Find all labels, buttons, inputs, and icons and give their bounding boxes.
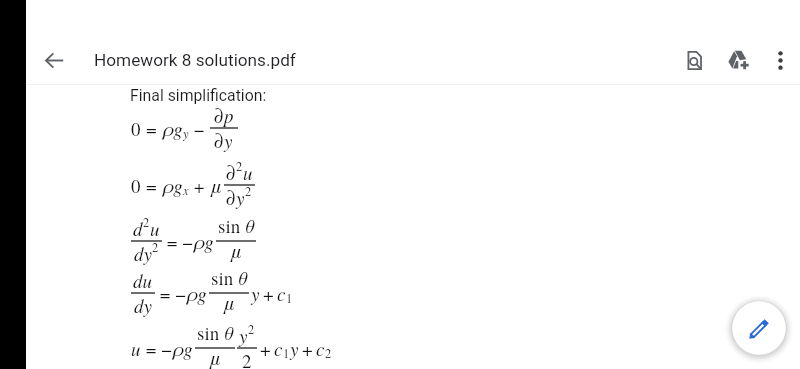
- staticText: y: [239, 323, 248, 348]
- staticText: u: [131, 336, 141, 361]
- staticText: +: [189, 173, 210, 198]
- staticText: μ: [210, 173, 222, 198]
- staticText: 2: [143, 214, 150, 231]
- staticText: =: [146, 173, 162, 198]
- staticText: −: [189, 116, 210, 141]
- staticText: +: [263, 281, 274, 306]
- staticText: 2: [236, 158, 243, 175]
- button[interactable]: Search document: [672, 38, 716, 82]
- staticText: sin: [218, 213, 241, 238]
- staticText: 2: [242, 348, 252, 369]
- staticText: 0: [131, 173, 146, 198]
- staticText: c: [316, 336, 325, 361]
- staticText: μ: [223, 290, 235, 315]
- staticText: θ: [237, 265, 247, 290]
- staticText: c: [274, 336, 283, 361]
- staticText: = −: [155, 281, 186, 306]
- staticText: ρg: [162, 173, 183, 198]
- staticText: y: [183, 125, 189, 142]
- staticText: = −: [141, 336, 172, 361]
- staticText: ρg: [172, 336, 193, 361]
- staticText: u: [243, 160, 253, 185]
- staticText: p: [224, 103, 234, 128]
- button[interactable]: Back: [32, 38, 76, 82]
- staticText: c: [277, 281, 286, 306]
- staticText: +: [260, 336, 271, 361]
- staticText: ∂: [214, 103, 224, 128]
- staticText: y: [224, 128, 233, 153]
- staticText: u: [150, 216, 160, 241]
- staticText: θ: [223, 320, 233, 345]
- staticText: =: [146, 116, 162, 141]
- staticText: Homework 8 solutions.pdf: [94, 50, 296, 70]
- staticText: du: [133, 268, 153, 293]
- button[interactable]: Add to Drive: [716, 38, 760, 82]
- staticText: y: [290, 336, 299, 361]
- staticText: dy: [134, 293, 152, 318]
- button[interactable]: More options: [760, 40, 800, 80]
- staticText: 2: [325, 345, 332, 362]
- staticText: 1: [286, 290, 293, 307]
- staticText: ∂: [226, 160, 236, 185]
- staticText: d: [133, 216, 143, 241]
- staticText: = −: [162, 229, 193, 254]
- staticText: θ: [244, 213, 254, 238]
- staticText: 2: [245, 183, 252, 200]
- staticText: +: [302, 336, 313, 361]
- staticText: sin: [197, 320, 220, 345]
- staticText: 2: [248, 321, 255, 338]
- staticText: 1: [283, 345, 290, 362]
- staticText: ρg: [193, 229, 214, 254]
- staticText: ∂: [226, 185, 236, 210]
- staticText: 0: [131, 116, 146, 141]
- staticText: ∂: [214, 128, 224, 153]
- staticText: ρg: [186, 281, 207, 306]
- button[interactable]: Edit: [732, 301, 786, 355]
- staticText: μ: [209, 345, 221, 369]
- staticText: Final simplification:: [130, 86, 267, 105]
- staticText: y: [236, 185, 245, 210]
- staticText: dy: [134, 241, 152, 266]
- staticText: 2: [152, 239, 159, 256]
- staticText: x: [183, 182, 189, 199]
- staticText: y: [251, 281, 260, 306]
- staticText: ρg: [162, 116, 183, 141]
- staticText: sin: [211, 265, 234, 290]
- staticText: μ: [230, 238, 242, 263]
